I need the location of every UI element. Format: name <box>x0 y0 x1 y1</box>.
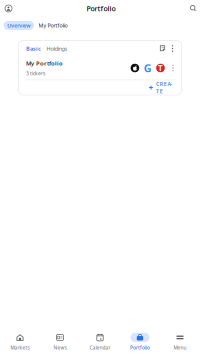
button[interactable]: Menu <box>160 333 200 351</box>
staticText: Markets <box>10 344 29 351</box>
button[interactable]: Holdings <box>46 44 67 53</box>
staticText: G <box>144 61 152 75</box>
staticText: Calendar <box>89 344 110 351</box>
button[interactable]: Account <box>0 0 16 17</box>
staticText: Basic <box>26 45 41 52</box>
button[interactable]: More options <box>169 44 176 53</box>
staticText: Portfolio <box>86 4 115 13</box>
staticText: Menu <box>173 344 186 351</box>
button[interactable]: Basic <box>26 44 41 53</box>
staticText: News <box>53 344 66 351</box>
staticText: 3 tickers <box>26 70 45 77</box>
button[interactable]: My Portfolio <box>18 56 181 79</box>
staticText: My Portfolio <box>26 59 63 67</box>
button[interactable]: Calendar <box>80 333 120 351</box>
staticText: T <box>158 63 163 73</box>
button[interactable]: Notes <box>158 44 167 53</box>
staticText: Holdings <box>46 45 67 52</box>
button[interactable]: CREATE <box>148 83 177 93</box>
button[interactable]: News <box>40 333 80 351</box>
button[interactable]: Search <box>185 0 200 17</box>
staticText: My Portfolio <box>39 22 68 29</box>
button[interactable]: My Portfolio <box>38 21 69 30</box>
button[interactable]: Portfolio <box>120 333 160 351</box>
button[interactable]: Overview <box>3 21 34 30</box>
staticText: CREATE <box>156 80 176 95</box>
staticText: Portfolio <box>130 344 150 351</box>
button[interactable]: Markets <box>0 333 40 351</box>
staticText: Overview <box>7 22 30 29</box>
